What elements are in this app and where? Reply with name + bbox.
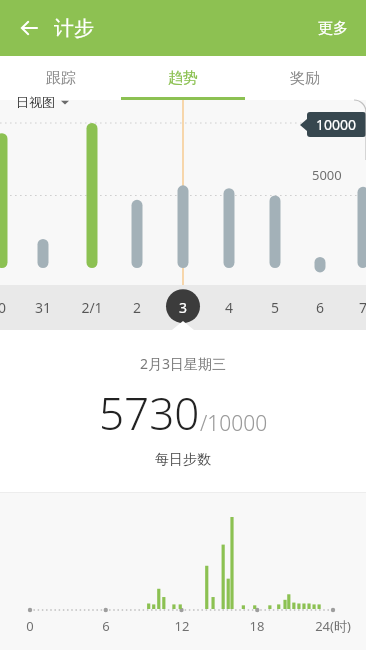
staticText: 31 (31, 298, 55, 317)
staticText: 18 (235, 617, 279, 635)
staticText: 奖励 (290, 69, 320, 88)
staticText: 0 (8, 617, 52, 635)
staticText: 0 (0, 298, 14, 317)
staticText: 更多 (318, 19, 348, 38)
staticText: 4 (217, 298, 241, 317)
staticText: 计步 (54, 16, 94, 41)
staticText: 2 (125, 298, 149, 317)
staticText: 7 (351, 298, 366, 317)
staticText: 6 (84, 617, 128, 635)
staticText: 2月3日星期三 (140, 354, 227, 373)
staticText: 24(时) (311, 617, 355, 635)
staticText: 10000 (316, 115, 357, 134)
button[interactable]: 奖励 (244, 56, 366, 100)
staticText: 2/1 (80, 298, 104, 317)
staticText: 跟踪 (46, 69, 76, 88)
staticText: 5000 (312, 166, 342, 184)
staticText: 5730 (99, 383, 200, 443)
button[interactable]: 更多 (306, 11, 360, 46)
button[interactable]: 跟踪 (0, 56, 122, 100)
button[interactable]: 趋势 (122, 56, 244, 100)
staticText: 趋势 (168, 69, 198, 88)
staticText: 3 (171, 298, 195, 317)
staticText: /10000 (200, 409, 268, 438)
button[interactable]: Back (10, 8, 50, 48)
staticText: 日视图 (16, 94, 55, 110)
staticText: 每日步数 (155, 451, 211, 469)
staticText: 6 (308, 298, 332, 317)
staticText: 12 (160, 617, 204, 635)
button[interactable]: 日视图 (16, 94, 69, 110)
staticText: 5 (263, 298, 287, 317)
